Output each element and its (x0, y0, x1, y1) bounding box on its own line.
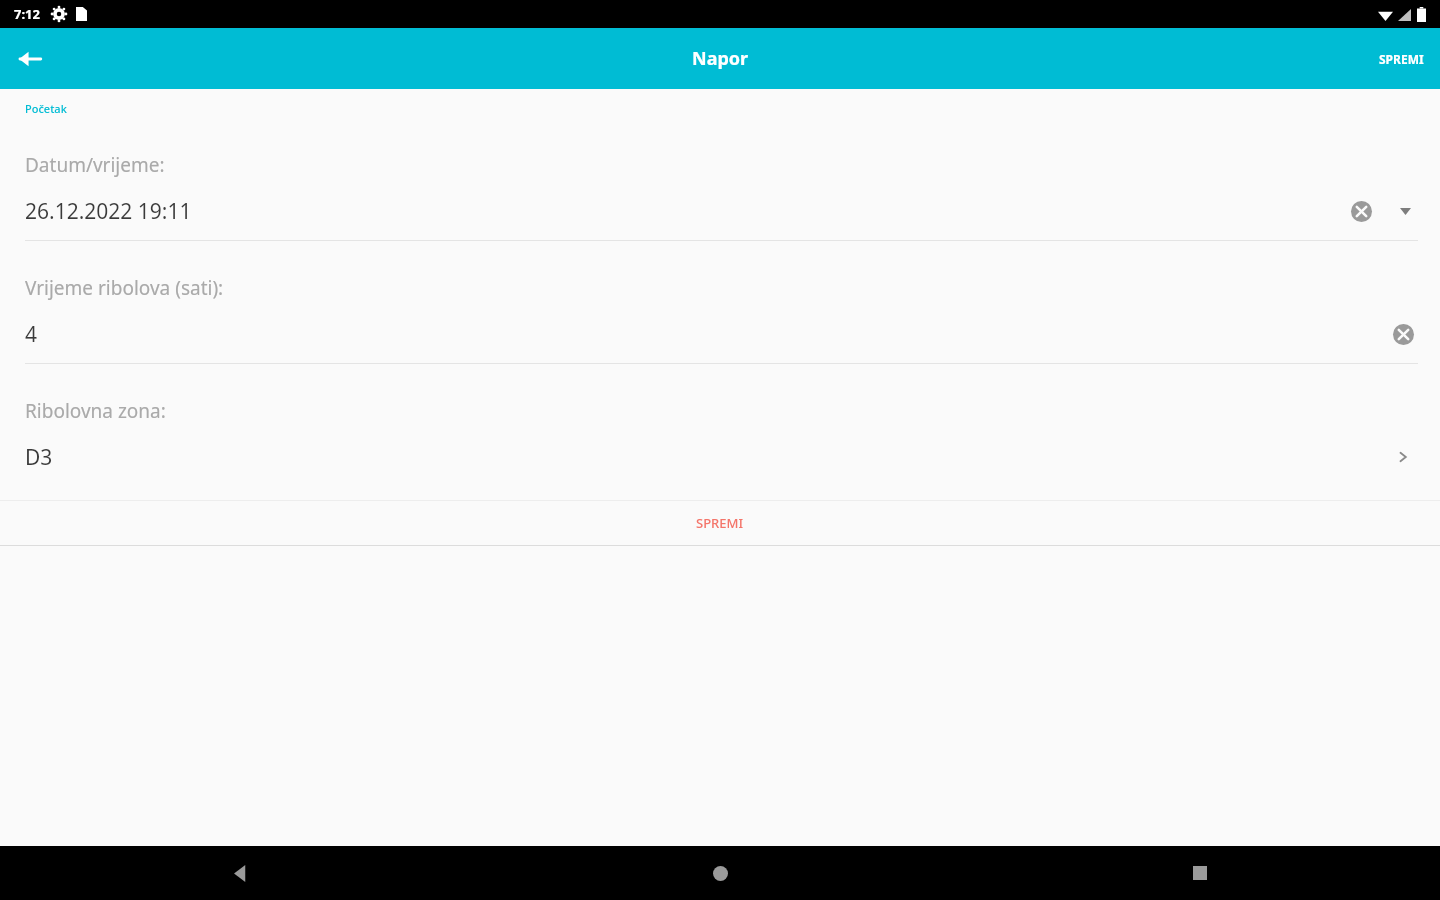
staticText: 4 (25, 320, 1388, 349)
button[interactable]: Clear (1346, 196, 1376, 226)
button[interactable]: SPREMI (0, 501, 1440, 545)
staticText: Ribolovna zona: (25, 398, 166, 424)
staticText: Datum/vrijeme: (25, 152, 165, 178)
button[interactable]: Clear (1388, 319, 1418, 349)
button[interactable]: Open date picker (1392, 198, 1418, 224)
staticText: Napor (692, 46, 749, 71)
button[interactable]: Datum/vrijeme: (0, 118, 1440, 241)
staticText: 26.12.2022 19:11 (25, 197, 1346, 226)
button[interactable]: Back (6, 35, 54, 83)
staticText: 7:12 (14, 5, 40, 23)
staticText: D3 (25, 443, 1388, 472)
button[interactable]: Select fishing zone (1388, 442, 1418, 472)
staticText: Početak (25, 101, 67, 116)
button[interactable]: Back (0, 846, 480, 900)
staticText: SPREMI (1379, 51, 1424, 67)
button[interactable]: Recent apps (960, 846, 1440, 900)
staticText: Vrijeme ribolova (sati): (25, 275, 224, 301)
button[interactable]: Home (480, 846, 960, 900)
staticText: SPREMI (696, 514, 744, 532)
button[interactable]: Ribolovna zona: (0, 364, 1440, 486)
button[interactable]: SPREMI (1363, 37, 1440, 81)
button[interactable]: Vrijeme ribolova (sati): (0, 241, 1440, 364)
